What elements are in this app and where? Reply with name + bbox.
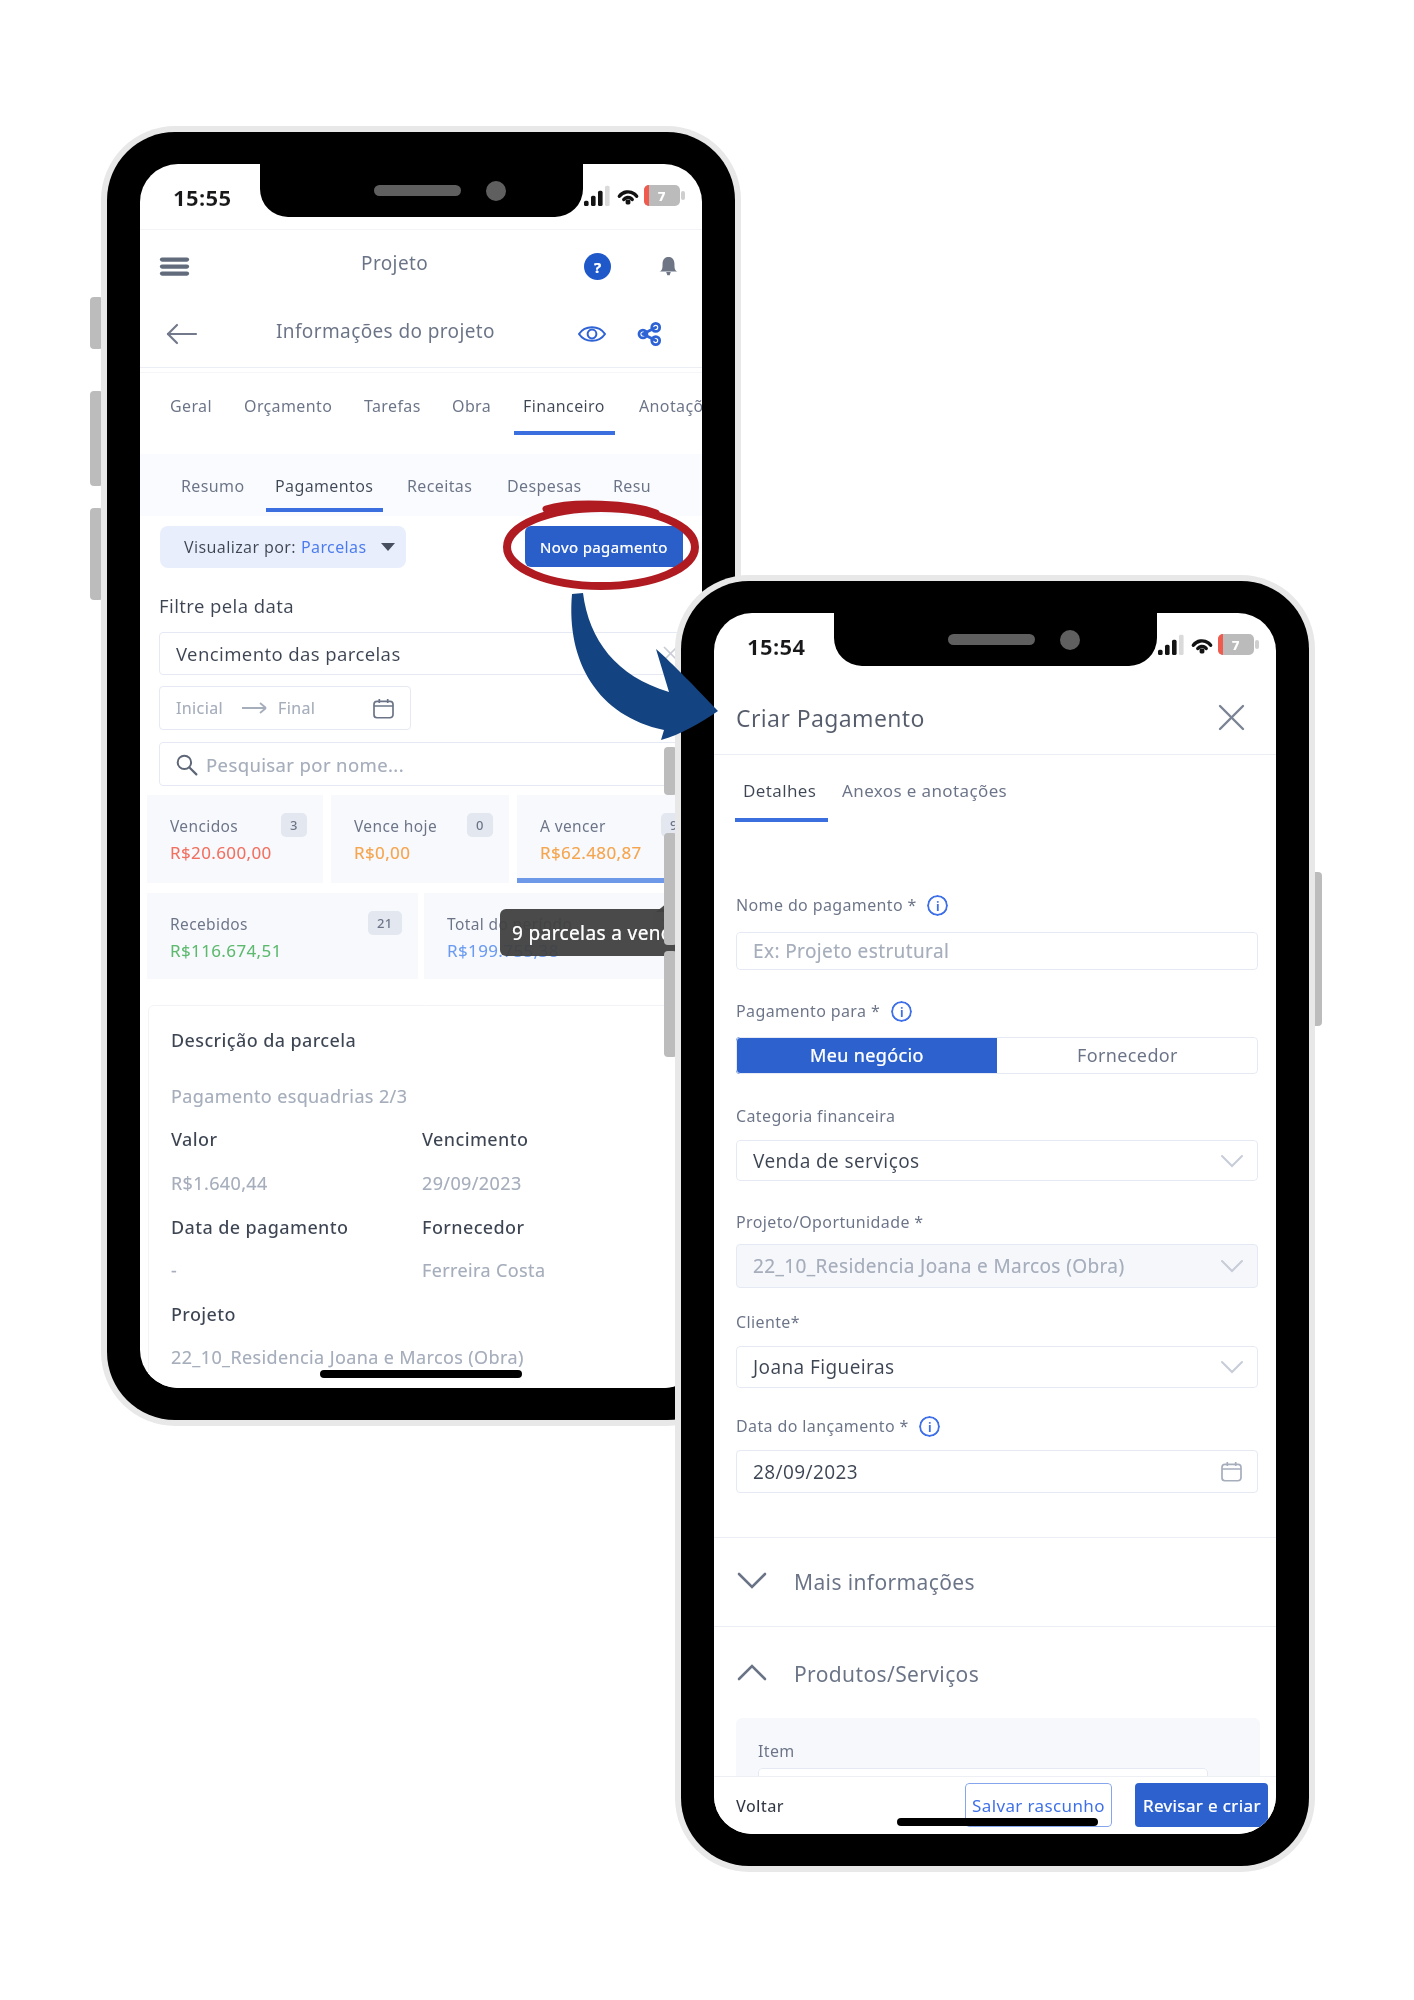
staticText: Receitas: [407, 475, 473, 497]
button[interactable]: Despesas: [494, 464, 594, 508]
button[interactable]: Obra: [434, 384, 510, 428]
staticText: Projeto: [361, 250, 429, 276]
staticText: 29/09/2023: [422, 1171, 522, 1196]
staticText: Pesquisar por nome...: [206, 752, 404, 777]
staticText: Visualizar por:: [184, 536, 301, 558]
staticText: Novo pagamento: [540, 537, 668, 557]
staticText: Vencimento das parcelas: [176, 641, 401, 666]
staticText: Cliente*: [736, 1311, 800, 1333]
button[interactable]: Vence hoje: [331, 795, 509, 883]
button[interactable]: 28/09/2023: [736, 1450, 1258, 1493]
button[interactable]: Fornecedor: [997, 1037, 1258, 1074]
button[interactable]: Resumo: [165, 464, 261, 508]
staticText: Parcelas: [301, 536, 367, 558]
staticText: Inicial: [176, 697, 224, 719]
staticText: R$1.640,44: [171, 1171, 268, 1196]
button[interactable]: Compartilhar: [628, 312, 672, 356]
button[interactable]: A vencer: [517, 795, 702, 883]
button[interactable]: Salvar rascunho: [965, 1783, 1112, 1827]
staticText: Despesas: [507, 475, 582, 497]
staticText: Nome do pagamento *: [736, 894, 917, 916]
staticText: Item: [758, 1740, 795, 1762]
button[interactable]: Fechar: [1209, 695, 1253, 739]
staticText: Resumo: [181, 475, 245, 497]
button[interactable]: Vencimento das parcelas: [159, 632, 702, 675]
button[interactable]: Anexos e anotações: [842, 768, 1008, 812]
staticText: i: [936, 898, 940, 914]
staticText: 7: [658, 187, 666, 205]
staticText: i: [900, 1004, 904, 1020]
staticText: Produtos/Serviços: [794, 1660, 980, 1689]
button[interactable]: Ex: Projeto estrutural: [736, 932, 1258, 970]
button[interactable]: Resu: [597, 464, 667, 508]
button[interactable]: Orçamento: [233, 384, 343, 428]
staticText: Anotaçõ: [639, 395, 702, 417]
button[interactable]: Voltar: [730, 1788, 800, 1824]
button[interactable]: Inicial: [159, 686, 411, 730]
staticText: R$116.674,51: [170, 939, 282, 962]
staticText: Categoria financeira: [736, 1105, 896, 1127]
staticText: R$20.600,00: [170, 841, 272, 864]
button[interactable]: 22_10_Residencia Joana e Marcos (Obra): [736, 1244, 1258, 1288]
button[interactable]: Novo pagamento: [525, 526, 683, 567]
button[interactable]: Pagamentos: [264, 464, 384, 508]
staticText: Valor: [171, 1127, 218, 1152]
staticText: 9 parcelas a vence: [512, 920, 682, 946]
staticText: 30: [662, 914, 678, 932]
staticText: Orçamento: [244, 395, 333, 417]
staticText: R$62.480,87: [540, 841, 642, 864]
button[interactable]: Anotaçõ: [623, 384, 702, 428]
staticText: Joana Figueiras: [753, 1354, 895, 1380]
staticText: Ex: Projeto estrutural: [753, 938, 950, 964]
staticText: 15:54: [747, 631, 806, 661]
button[interactable]: Recebidos: [147, 893, 418, 979]
button[interactable]: Total do período: [424, 893, 702, 979]
staticText: 15:55: [173, 182, 232, 212]
button[interactable]: Vencidos: [147, 795, 323, 883]
button[interactable]: Ajuda: [575, 244, 619, 288]
staticText: Tarefas: [364, 395, 421, 417]
staticText: Pagamento para *: [736, 1000, 881, 1022]
staticText: R$199.755,38: [447, 939, 559, 962]
staticText: Voltar: [736, 1795, 784, 1817]
button[interactable]: Detalhes: [740, 768, 820, 812]
button[interactable]: Financeiro: [509, 384, 619, 428]
staticText: -: [171, 1258, 178, 1283]
staticText: Pagamento esquadrias 2/3: [171, 1084, 408, 1109]
button[interactable]: Venda de serviços: [736, 1140, 1258, 1181]
button[interactable]: Pesquisar por nome...: [159, 742, 702, 786]
button[interactable]: Joana Figueiras: [736, 1346, 1258, 1388]
staticText: 7: [1232, 636, 1240, 654]
staticText: Revisar e criar: [1143, 1794, 1261, 1817]
staticText: Projeto/Oportunidade *: [736, 1211, 924, 1233]
staticText: Criar Pagamento: [736, 702, 925, 733]
staticText: ?: [594, 257, 602, 277]
button[interactable]: Menu: [152, 244, 196, 288]
staticText: Geral: [170, 395, 212, 417]
staticText: 21: [377, 914, 393, 932]
staticText: Anexos e anotações: [842, 779, 1008, 802]
button[interactable]: Geral: [151, 384, 231, 428]
staticText: Data do lançamento *: [736, 1415, 909, 1437]
button[interactable]: Meu negócio: [736, 1037, 997, 1074]
button[interactable]: Visualizar por:: [160, 526, 406, 568]
staticText: R$0,00: [354, 841, 411, 864]
button[interactable]: Receitas: [393, 464, 487, 508]
button[interactable]: Tarefas: [347, 384, 437, 428]
button[interactable]: Visualizar: [570, 312, 614, 356]
staticText: Projeto: [171, 1302, 236, 1327]
staticText: Venda de serviços: [753, 1148, 920, 1174]
staticText: Vencimento: [422, 1127, 529, 1152]
button[interactable]: Revisar e criar: [1135, 1783, 1268, 1827]
staticText: Detalhes: [743, 779, 817, 802]
staticText: Filtre pela data: [159, 593, 295, 618]
button[interactable]: Voltar: [160, 312, 204, 356]
staticText: Pagamentos: [275, 475, 374, 497]
staticText: A vencer: [540, 815, 606, 836]
staticText: Mais informações: [794, 1568, 975, 1597]
staticText: Recebidos: [170, 913, 248, 934]
button[interactable]: Mais informações: [714, 1538, 1276, 1626]
button[interactable]: Produtos/Serviços: [714, 1627, 1276, 1717]
staticText: Total do período: [447, 913, 573, 934]
button[interactable]: Notificações: [646, 244, 690, 288]
